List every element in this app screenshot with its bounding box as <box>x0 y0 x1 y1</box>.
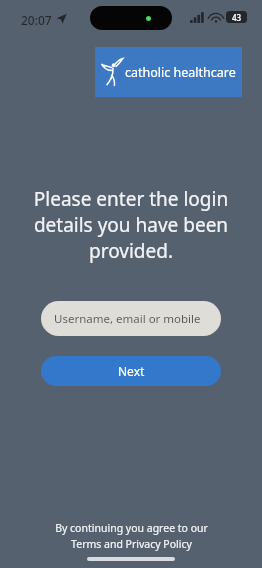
staticText: Next <box>118 363 145 379</box>
staticText: 43 <box>232 12 242 23</box>
button[interactable]: Terms and Privacy Policy <box>71 537 192 551</box>
staticText: catholic healthcare <box>125 64 236 81</box>
staticText: Please enter the login details you have … <box>20 186 242 264</box>
button[interactable]: Username, email or mobile <box>41 301 221 336</box>
button[interactable]: Next <box>41 356 221 386</box>
button[interactable]: Catholic Healthcare logo <box>95 47 242 97</box>
staticText: Username, email or mobile <box>54 311 201 327</box>
staticText: Terms and Privacy Policy <box>71 537 192 551</box>
staticText: By continuing you agree to our <box>55 521 208 535</box>
staticText: 20:07 <box>21 12 52 28</box>
